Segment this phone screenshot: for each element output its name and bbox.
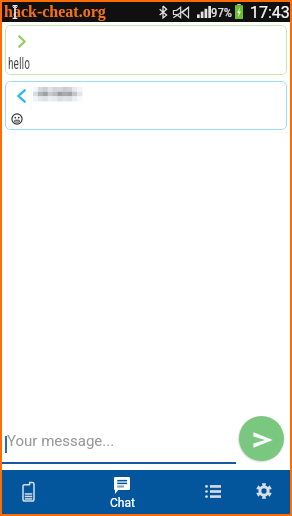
button[interactable]: Send (239, 416, 284, 461)
staticText: Chat (110, 496, 135, 510)
staticText: hello (8, 54, 30, 73)
button[interactable]: Walkie Talkie (6, 470, 54, 514)
staticText: 97% (211, 5, 233, 20)
button[interactable]: List (189, 470, 237, 514)
staticText: 17:43 (250, 3, 290, 22)
staticText: hack-cheat.org (4, 3, 106, 21)
button[interactable] (5, 81, 287, 130)
button[interactable]: Settings (240, 470, 288, 514)
button[interactable]: hello (5, 25, 287, 75)
staticText: Your message... (7, 432, 115, 450)
button[interactable]: Chat (98, 470, 146, 514)
